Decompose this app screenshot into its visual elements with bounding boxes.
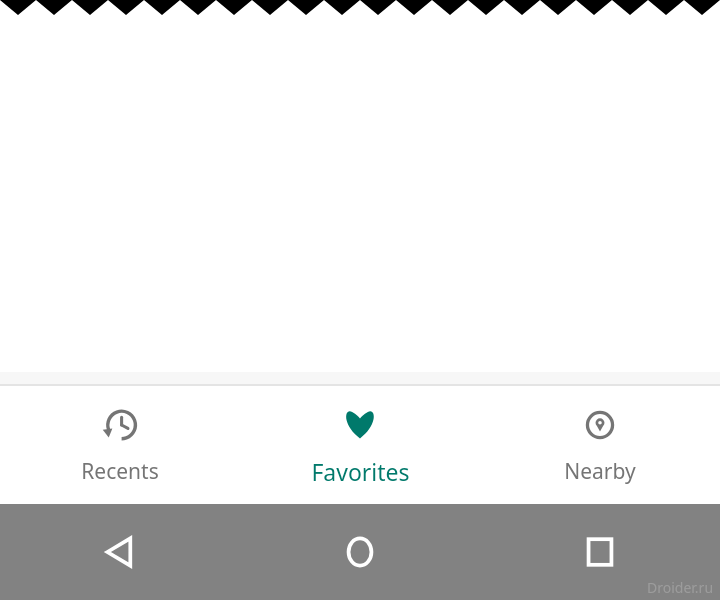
- button[interactable]: Recent apps: [480, 504, 720, 600]
- staticText: Favorites: [311, 456, 410, 487]
- staticText: Recents: [81, 457, 159, 486]
- staticText: Nearby: [564, 457, 636, 486]
- button[interactable]: Home: [240, 504, 480, 600]
- button[interactable]: Favorites: [240, 386, 480, 504]
- button[interactable]: Nearby: [480, 386, 720, 504]
- staticText: Droider.ru: [647, 578, 714, 597]
- button[interactable]: Back: [0, 504, 240, 600]
- button[interactable]: Recents: [0, 386, 240, 504]
